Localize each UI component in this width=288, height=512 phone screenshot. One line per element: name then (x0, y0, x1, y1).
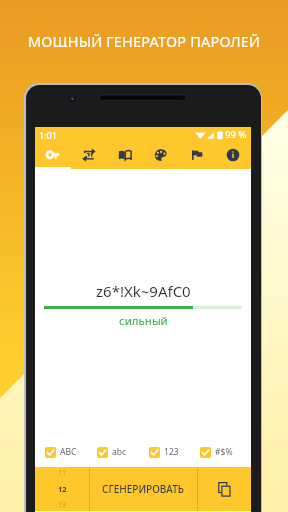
staticText: 99 % (225, 128, 247, 141)
staticText: #$% (215, 446, 233, 458)
button[interactable]: Info (215, 142, 251, 169)
staticText: 13 (58, 500, 67, 510)
button[interactable]: 11 (35, 467, 89, 511)
button[interactable]: 123 (149, 446, 179, 458)
staticText: abc (112, 446, 127, 458)
button[interactable]: СГЕНЕРИРОВАТЬ (90, 467, 197, 511)
staticText: 11 (58, 468, 67, 478)
button[interactable]: #$% (200, 446, 233, 458)
staticText: ABC (60, 446, 77, 458)
button[interactable]: abc (97, 446, 127, 458)
staticText: 123 (164, 446, 179, 458)
button[interactable]: Passwords (35, 142, 71, 169)
staticText: z6*!Xk~9AfC0 (96, 281, 191, 301)
button[interactable]: Themes (143, 142, 179, 169)
staticText: МОЩНЫЙ ГЕНЕРАТОР ПАРОЛЕЙ (28, 31, 261, 47)
button[interactable]: Generate (71, 142, 107, 169)
button[interactable]: Flags (179, 142, 215, 169)
staticText: 12 (58, 484, 67, 494)
button[interactable]: Dictionary (107, 142, 143, 169)
button[interactable]: ABC (45, 446, 77, 458)
staticText: сильный (119, 313, 168, 329)
staticText: 1:01 (39, 129, 57, 141)
staticText: СГЕНЕРИРОВАТЬ (102, 482, 185, 496)
button[interactable]: Copy (198, 467, 251, 511)
